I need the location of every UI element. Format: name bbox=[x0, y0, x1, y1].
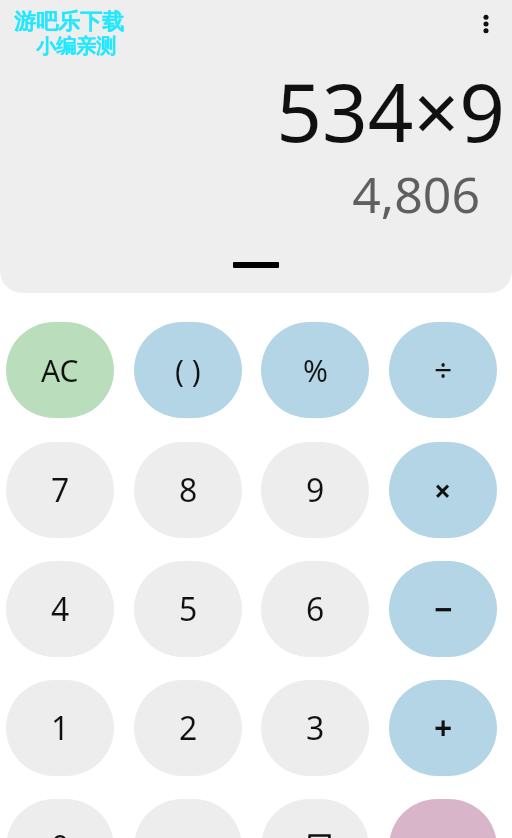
staticText: 3 bbox=[306, 706, 325, 750]
button[interactable]: Expand history bbox=[233, 262, 279, 268]
button[interactable]: % bbox=[261, 322, 369, 418]
staticText: 游吧乐下载 bbox=[14, 8, 124, 36]
button[interactable]: 1 bbox=[6, 680, 114, 776]
staticText: × bbox=[434, 470, 452, 511]
staticText: 6 bbox=[306, 587, 325, 631]
button[interactable]: Delete bbox=[261, 799, 369, 838]
staticText: 4 bbox=[51, 587, 70, 631]
staticText: ÷ bbox=[434, 348, 453, 392]
button[interactable]: × bbox=[389, 442, 497, 538]
staticText: 8 bbox=[179, 468, 198, 512]
button[interactable]: − bbox=[389, 561, 497, 657]
staticText: 7 bbox=[51, 468, 70, 512]
button[interactable]: 7 bbox=[6, 442, 114, 538]
button[interactable]: 3 bbox=[261, 680, 369, 776]
staticText: ( ) bbox=[175, 350, 201, 391]
staticText: − bbox=[434, 587, 453, 631]
staticText: AC bbox=[41, 350, 79, 391]
button[interactable]: ( ) bbox=[134, 322, 242, 418]
staticText: 534×9 bbox=[276, 56, 505, 165]
button[interactable]: 5 bbox=[134, 561, 242, 657]
staticText: 2 bbox=[179, 706, 198, 750]
button[interactable]: 9 bbox=[261, 442, 369, 538]
staticText: 0 bbox=[51, 825, 70, 838]
button[interactable]: ÷ bbox=[389, 322, 497, 418]
staticText: 5 bbox=[179, 587, 198, 631]
staticText: 4,806 bbox=[352, 160, 480, 228]
button[interactable]: . bbox=[134, 799, 242, 838]
button[interactable]: = bbox=[389, 799, 497, 838]
button[interactable]: 0 bbox=[6, 799, 114, 838]
button[interactable]: More options bbox=[462, 0, 510, 48]
staticText: 1 bbox=[51, 706, 70, 750]
staticText: 小编亲测 bbox=[36, 34, 116, 59]
staticText: 9 bbox=[306, 468, 325, 512]
staticText: % bbox=[303, 350, 328, 391]
staticText: + bbox=[434, 706, 453, 750]
button[interactable]: AC bbox=[6, 322, 114, 418]
button[interactable]: + bbox=[389, 680, 497, 776]
button[interactable]: 8 bbox=[134, 442, 242, 538]
button[interactable]: 4 bbox=[6, 561, 114, 657]
button[interactable]: 6 bbox=[261, 561, 369, 657]
button[interactable]: 2 bbox=[134, 680, 242, 776]
